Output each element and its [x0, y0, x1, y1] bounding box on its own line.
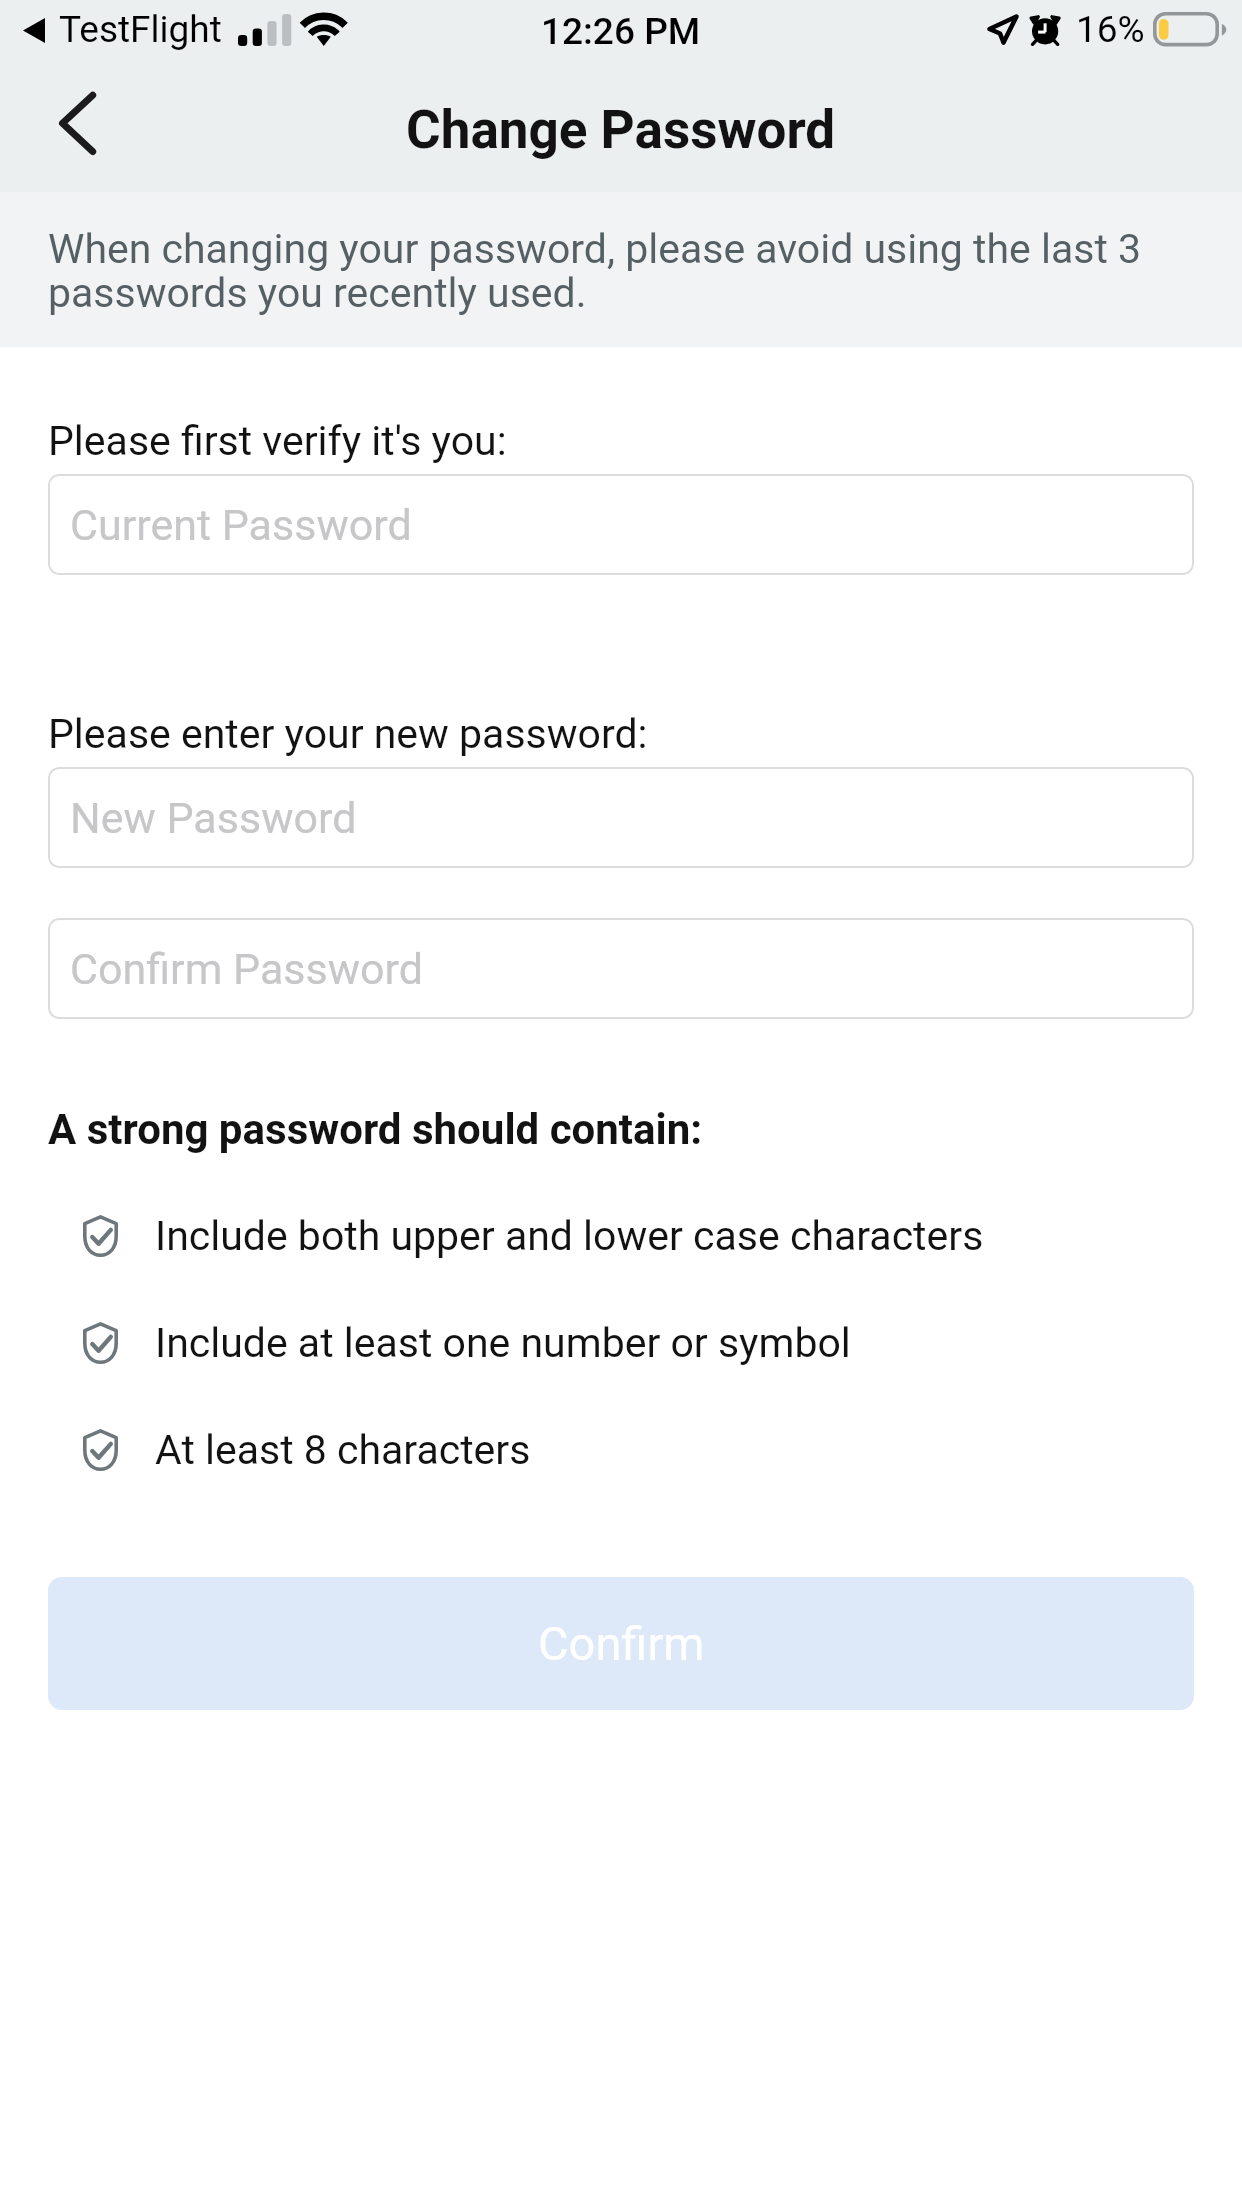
staticText: When changing your password, please avoi…: [48, 228, 1198, 316]
staticText: Include both upper and lower case charac…: [155, 1212, 984, 1260]
staticText: 12:26 PM: [541, 10, 701, 53]
staticText: Include at least one number or symbol: [155, 1319, 851, 1367]
staticText: Change Password: [406, 99, 836, 161]
button[interactable]: Confirm: [48, 1577, 1194, 1710]
button[interactable]: Back: [34, 78, 118, 170]
staticText: Confirm Password: [70, 944, 423, 994]
staticText: TestFlight: [59, 8, 222, 51]
button[interactable]: Confirm Password: [48, 918, 1194, 1019]
staticText: Please first verify it's you:: [48, 417, 507, 465]
staticText: 16%: [1076, 8, 1145, 51]
staticText: Confirm: [538, 1616, 705, 1671]
button[interactable]: New Password: [48, 767, 1194, 868]
staticText: At least 8 characters: [155, 1426, 531, 1474]
staticText: Please enter your new password:: [48, 710, 648, 758]
staticText: A strong password should contain:: [48, 1105, 703, 1154]
button[interactable]: Current Password: [48, 474, 1194, 575]
staticText: New Password: [70, 793, 357, 843]
staticText: Current Password: [70, 500, 412, 550]
